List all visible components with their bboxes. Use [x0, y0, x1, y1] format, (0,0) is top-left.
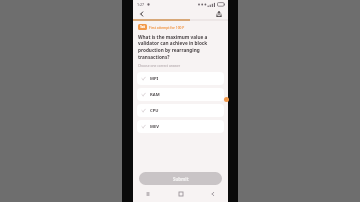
button[interactable]: Home — [176, 189, 186, 199]
button[interactable]: Back — [137, 9, 147, 19]
staticText: MPI — [150, 76, 159, 82]
button[interactable]: Recents — [143, 189, 153, 199]
staticText: MEV — [150, 124, 160, 130]
staticText: RAM — [150, 92, 160, 98]
staticText: Choose one correct answer — [138, 63, 181, 67]
staticText: What is the maximum value a validator ca… — [138, 34, 223, 61]
button[interactable]: Share — [214, 9, 224, 19]
staticText: 1st — [140, 25, 145, 29]
staticText: First attempt for 100 P — [149, 25, 185, 29]
staticText: 1:27 — [137, 2, 145, 7]
button[interactable]: Back — [208, 189, 218, 199]
button[interactable]: RAM — [137, 88, 224, 101]
button[interactable]: MEV — [137, 120, 224, 133]
button[interactable]: CPU — [137, 104, 224, 117]
button[interactable]: Submit — [139, 172, 222, 185]
staticText: Submit — [173, 176, 189, 182]
button[interactable]: MPI — [137, 72, 224, 85]
staticText: CPU — [150, 108, 159, 114]
